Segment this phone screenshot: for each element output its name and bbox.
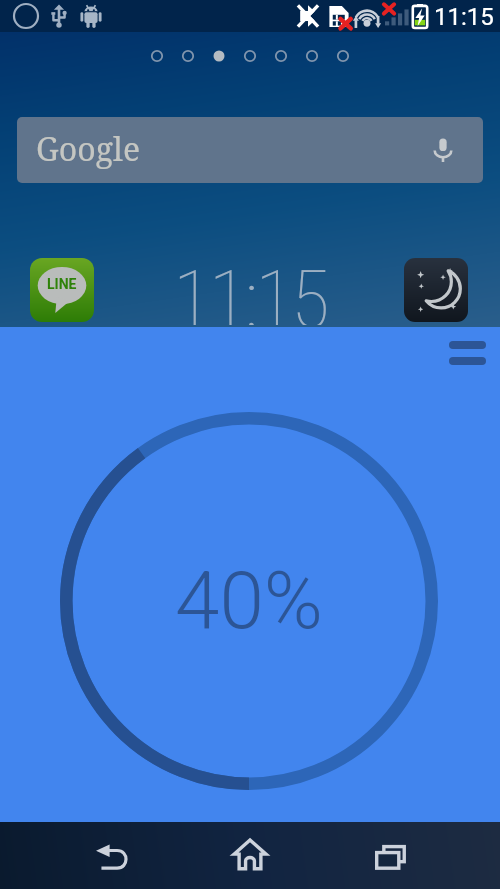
staticText: 11:15 <box>434 3 494 31</box>
button[interactable]: Recent apps <box>333 822 500 889</box>
button[interactable]: Home <box>166 822 333 889</box>
staticText: 11:15 <box>173 253 327 325</box>
button[interactable]: Night mode <box>404 258 468 322</box>
button[interactable]: Menu <box>441 333 493 375</box>
button[interactable]: Back <box>0 822 166 889</box>
staticText: 40% <box>175 554 323 648</box>
button[interactable]: LINE <box>30 258 94 322</box>
staticText: Google <box>36 127 141 171</box>
staticText: LINE <box>47 276 77 292</box>
other: Voice search <box>430 137 456 163</box>
button[interactable]: Google <box>17 117 483 183</box>
